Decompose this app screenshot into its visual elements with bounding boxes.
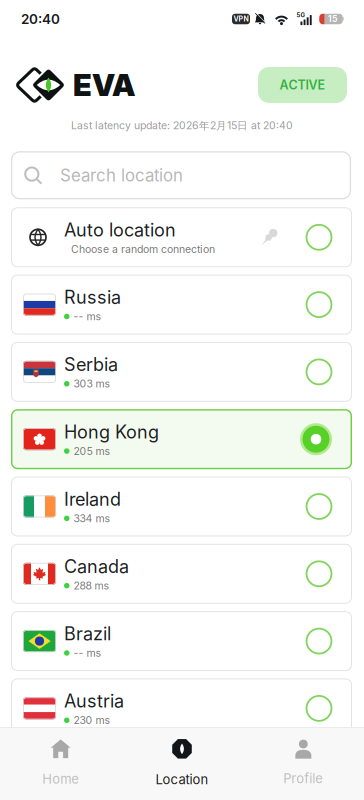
staticText: Serbia	[64, 354, 118, 375]
staticText: 334 ms	[73, 512, 110, 525]
staticText: Auto location	[64, 219, 176, 241]
staticText: 20:40	[21, 11, 60, 27]
staticText: 230 ms	[73, 714, 110, 727]
button[interactable]: Canada	[11, 544, 352, 604]
button[interactable]: ACTIVE	[258, 67, 347, 103]
button[interactable]: Brazil	[11, 611, 352, 671]
staticText: Last latency update: 2026年2月15日 at 20:40	[71, 119, 293, 132]
staticText: Brazil	[64, 623, 111, 645]
button[interactable]: Ireland	[11, 476, 352, 536]
staticText: -- ms	[73, 647, 101, 659]
button[interactable]: Location	[121, 730, 243, 796]
button[interactable]: Hong Kong	[11, 409, 352, 469]
button[interactable]: Search location	[11, 151, 351, 199]
staticText: Ireland	[64, 488, 121, 510]
button[interactable]: Austria	[11, 678, 352, 738]
button[interactable]: Profile	[243, 730, 364, 796]
staticText: Choose a random connection	[71, 243, 215, 255]
staticText: Canada	[64, 555, 129, 577]
button[interactable]: Home	[0, 730, 121, 796]
staticText: Search location	[60, 165, 183, 185]
staticText: Russia	[64, 286, 121, 308]
staticText: EVA	[73, 67, 135, 103]
staticText: 288 ms	[73, 579, 109, 592]
staticText: Location	[155, 772, 208, 787]
staticText: Profile	[283, 771, 323, 786]
staticText: 303 ms	[73, 377, 110, 390]
staticText: 15	[328, 14, 337, 24]
staticText: 205 ms	[73, 445, 110, 457]
staticText: Hong Kong	[64, 421, 159, 443]
staticText: VPN	[233, 15, 248, 23]
button[interactable]: Serbia	[11, 342, 352, 402]
staticText: Austria	[64, 690, 124, 712]
staticText: -- ms	[73, 310, 101, 323]
staticText: ACTIVE	[279, 77, 325, 92]
staticText: Home	[42, 771, 79, 787]
button[interactable]: Auto location	[11, 207, 352, 267]
staticText: 5G	[296, 11, 305, 19]
button[interactable]: Russia	[11, 275, 352, 335]
